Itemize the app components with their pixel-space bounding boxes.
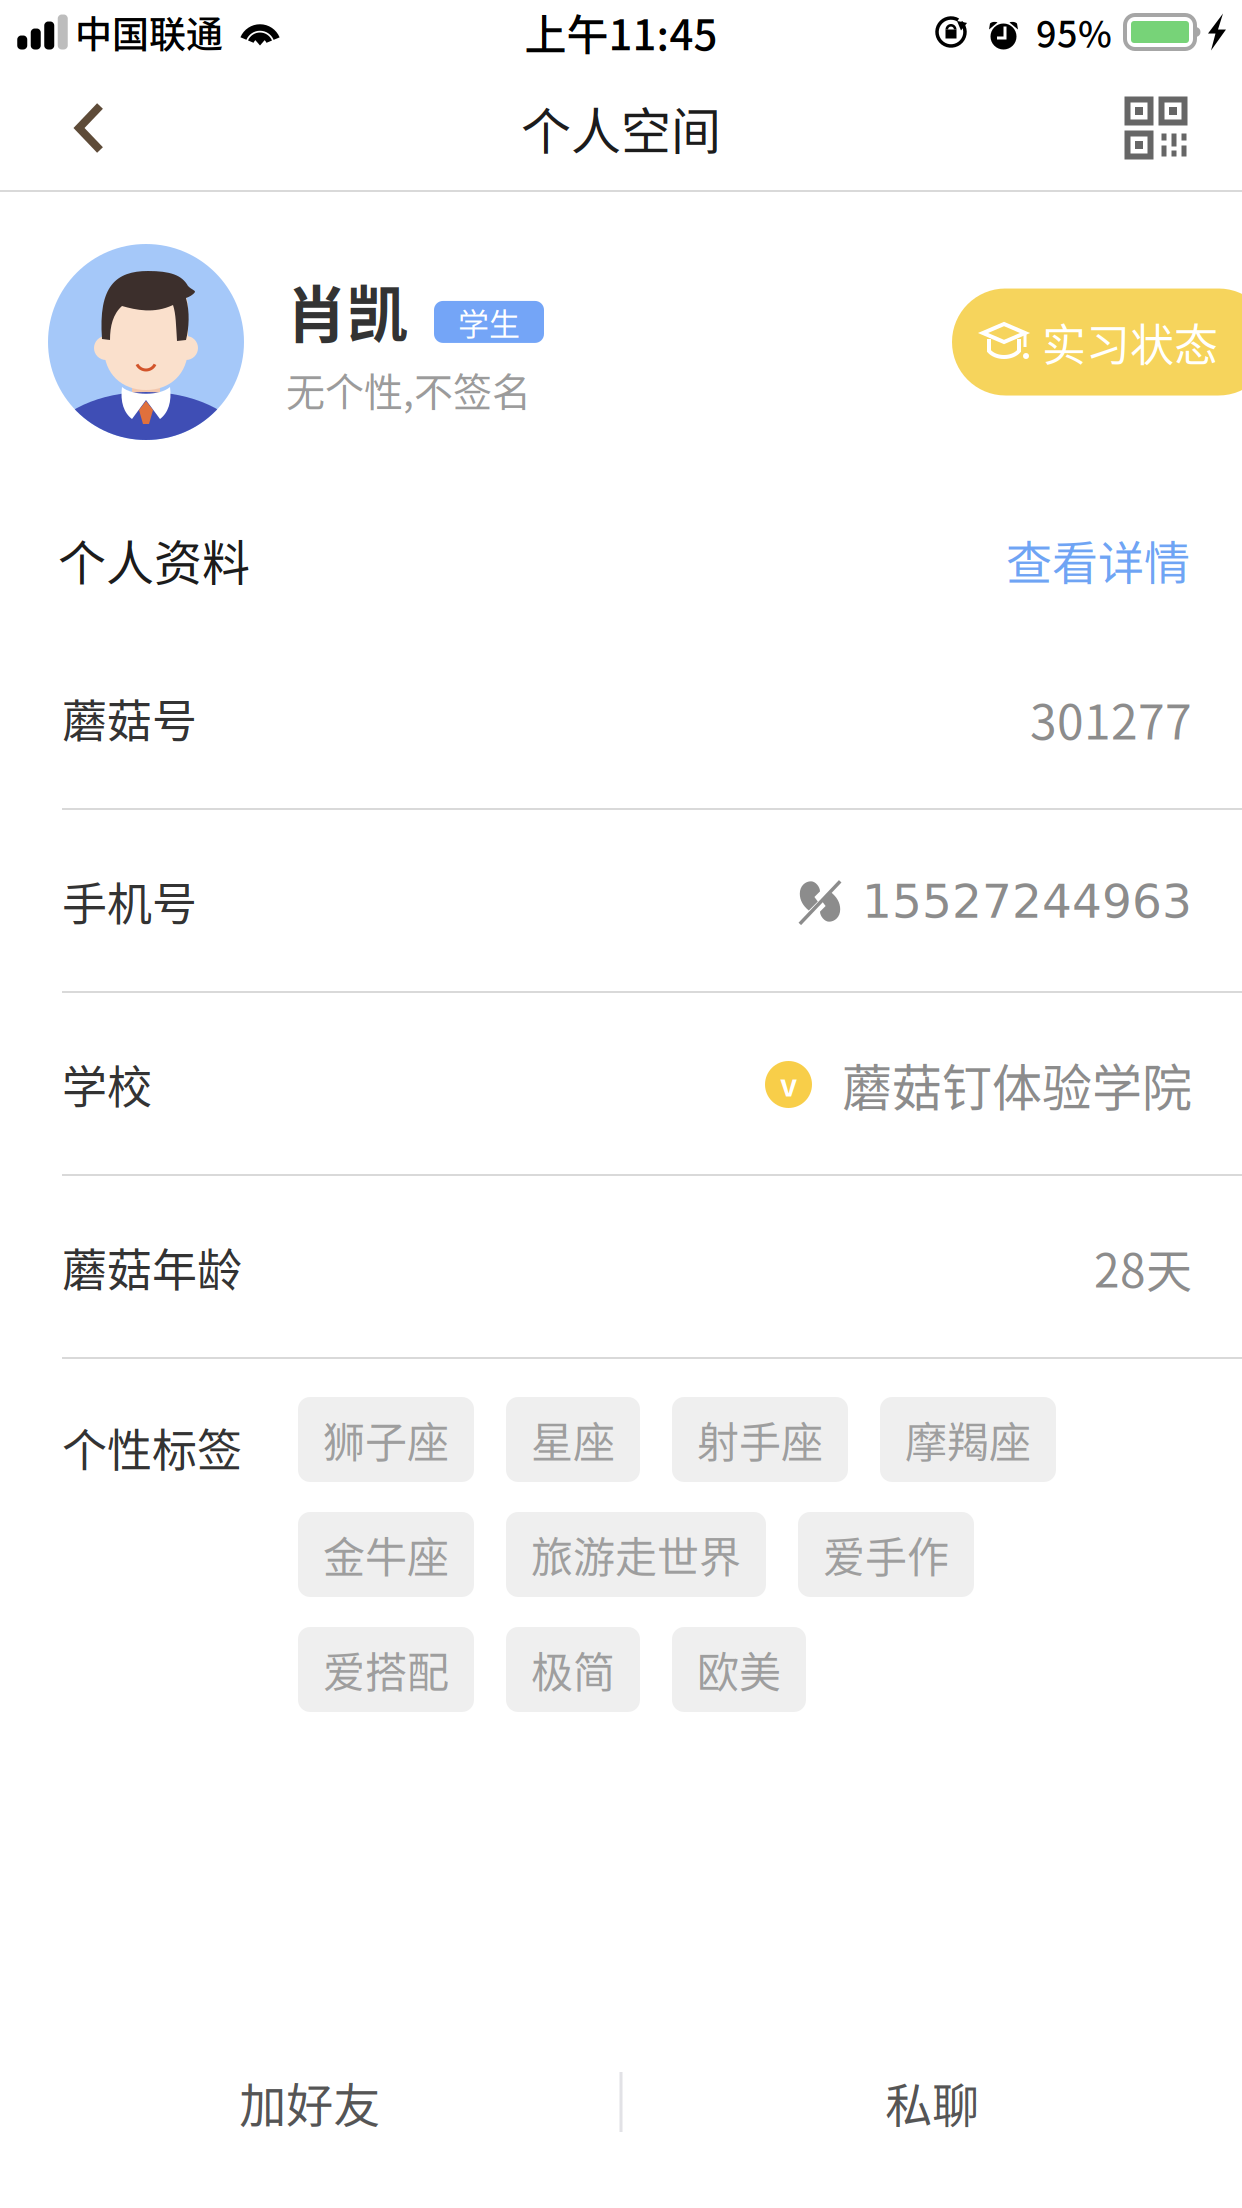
button[interactable]: 狮子座	[298, 1397, 474, 1482]
staticText: 私聊	[885, 2068, 979, 2136]
staticText: 星座	[531, 1409, 615, 1470]
button[interactable]: 旅游走世界	[506, 1512, 766, 1597]
staticText: 爱搭配	[323, 1639, 449, 1700]
staticText: 301277	[1030, 684, 1192, 753]
staticText: 个性标签	[62, 1415, 242, 1480]
button[interactable]: 实习状态	[952, 288, 1242, 395]
button[interactable]: 手机号	[0, 810, 1242, 993]
staticText: 摩羯座	[905, 1409, 1031, 1470]
staticText: 金牛座	[323, 1524, 449, 1585]
staticText: 蘑菇年龄	[62, 1235, 242, 1300]
button[interactable]: 加好友	[0, 2032, 619, 2172]
staticText: 个人资料	[58, 525, 250, 594]
button[interactable]: 查看详情	[1006, 526, 1190, 593]
staticText: 上午11:45	[524, 2, 717, 62]
staticText: 肖凯	[286, 267, 408, 355]
staticText: 实习状态	[1042, 310, 1218, 374]
button[interactable]: 爱手作	[798, 1512, 974, 1597]
staticText: v	[780, 1062, 797, 1105]
button[interactable]: 返回	[30, 64, 150, 192]
staticText: 28天	[1094, 1234, 1192, 1301]
button[interactable]: 蘑菇号	[0, 627, 1242, 810]
staticText: 个人空间	[521, 92, 721, 164]
staticText: 手机号	[62, 869, 197, 934]
button[interactable]: 二维码	[1092, 64, 1222, 192]
staticText: 加好友	[239, 2068, 380, 2136]
button[interactable]: 金牛座	[298, 1512, 474, 1597]
staticText: 欧美	[697, 1639, 781, 1700]
button[interactable]: 学校	[0, 993, 1242, 1176]
staticText: 学校	[62, 1052, 152, 1117]
button[interactable]: 蘑菇年龄	[0, 1176, 1242, 1359]
button[interactable]: 射手座	[672, 1397, 848, 1482]
button[interactable]: 星座	[506, 1397, 640, 1482]
staticText: 中国联通	[75, 5, 223, 59]
button[interactable]: 摩羯座	[880, 1397, 1056, 1482]
staticText: 爱手作	[823, 1524, 949, 1585]
staticText: 无个性,不签名	[286, 361, 531, 417]
staticText: 极简	[531, 1639, 615, 1700]
button[interactable]: 私聊	[622, 2032, 1242, 2172]
staticText: 学生	[458, 299, 520, 344]
staticText: 95%	[1036, 6, 1112, 58]
button[interactable]: 欧美	[672, 1627, 806, 1712]
staticText: 射手座	[697, 1409, 823, 1470]
button[interactable]: 极简	[506, 1627, 640, 1712]
staticText: 旅游走世界	[531, 1524, 741, 1585]
button[interactable]: 爱搭配	[298, 1627, 474, 1712]
staticText: 查看详情	[1006, 526, 1190, 593]
staticText: 蘑菇钉体验学院	[842, 1048, 1192, 1121]
staticText: 蘑菇号	[62, 686, 197, 751]
staticText: 狮子座	[323, 1409, 449, 1470]
staticText: 15527244963	[862, 874, 1192, 929]
